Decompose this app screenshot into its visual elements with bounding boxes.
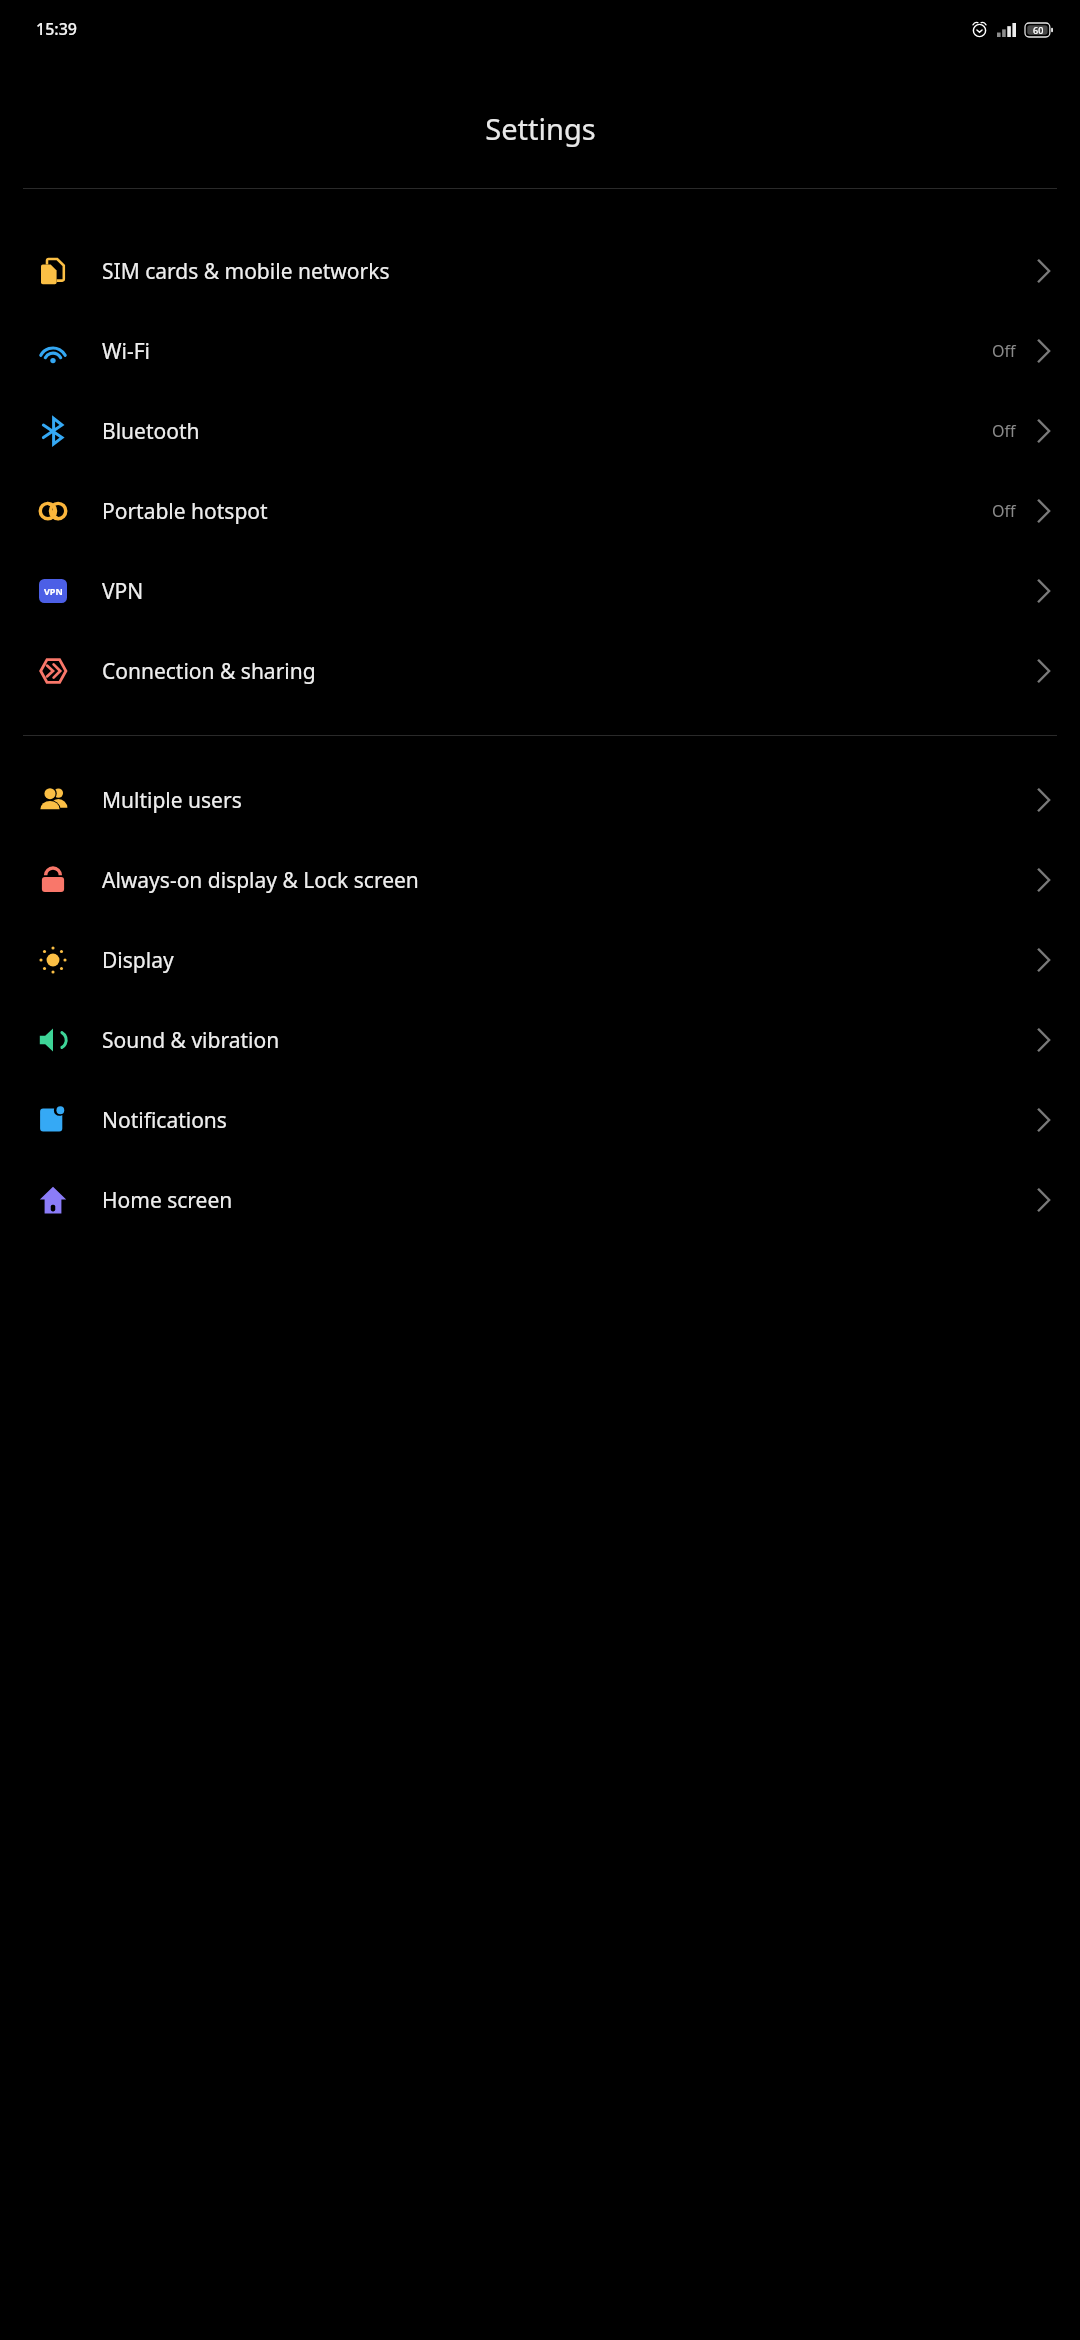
staticText: 60 xyxy=(1033,24,1044,36)
staticText: VPN xyxy=(44,585,63,597)
button[interactable]: Bluetooth xyxy=(0,391,1080,471)
staticText: Portable hotspot xyxy=(102,497,992,526)
button[interactable]: Wi-Fi xyxy=(0,311,1080,391)
staticText: Notifications xyxy=(102,1106,1036,1135)
staticText: 15:39 xyxy=(36,18,77,40)
staticText: Bluetooth xyxy=(102,417,992,446)
button[interactable]: SIM cards & mobile networks xyxy=(0,231,1080,311)
staticText: Settings xyxy=(485,109,596,148)
staticText: Sound & vibration xyxy=(102,1026,1036,1055)
staticText: Always-on display & Lock screen xyxy=(102,866,1036,895)
button[interactable]: Display xyxy=(0,920,1080,1000)
button[interactable]: Portable hotspot xyxy=(0,471,1080,551)
button[interactable]: Notifications xyxy=(0,1080,1080,1160)
staticText: Display xyxy=(102,946,1036,975)
button[interactable]: VPN xyxy=(0,551,1080,631)
button[interactable]: Sound & vibration xyxy=(0,1000,1080,1080)
button[interactable]: Always-on display & Lock screen xyxy=(0,840,1080,920)
button[interactable]: Multiple users xyxy=(0,760,1080,840)
staticText: Wi-Fi xyxy=(102,337,992,366)
button[interactable]: Connection & sharing xyxy=(0,631,1080,711)
staticText: Multiple users xyxy=(102,786,1036,815)
staticText: Off xyxy=(992,340,1016,362)
staticText: Connection & sharing xyxy=(102,657,1036,686)
staticText: Off xyxy=(992,420,1016,442)
staticText: Off xyxy=(992,500,1016,522)
staticText: Home screen xyxy=(102,1186,1036,1215)
staticText: SIM cards & mobile networks xyxy=(102,257,1036,286)
staticText: VPN xyxy=(102,577,1036,606)
button[interactable]: Home screen xyxy=(0,1160,1080,1240)
